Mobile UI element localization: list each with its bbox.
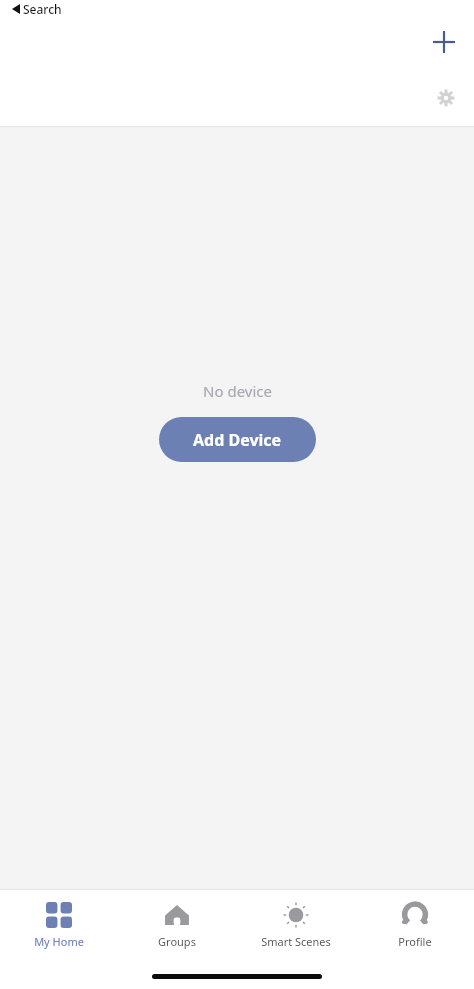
staticText: Search	[23, 1, 62, 17]
button[interactable]: Groups	[118, 894, 236, 949]
button[interactable]: My Home	[0, 894, 118, 949]
staticText: No device	[203, 381, 272, 401]
staticText: Profile	[398, 934, 432, 949]
staticText: Add Device	[193, 429, 282, 451]
button[interactable]: Add	[422, 20, 466, 64]
button[interactable]: Search	[10, 0, 64, 18]
button[interactable]: Add Device	[159, 417, 316, 462]
staticText: Groups	[158, 934, 196, 949]
staticText: My Home	[34, 934, 84, 949]
button[interactable]: Settings	[426, 78, 466, 118]
button[interactable]: Profile	[355, 894, 474, 949]
staticText: Smart Scenes	[261, 934, 331, 949]
button[interactable]: Smart Scenes	[236, 894, 355, 949]
